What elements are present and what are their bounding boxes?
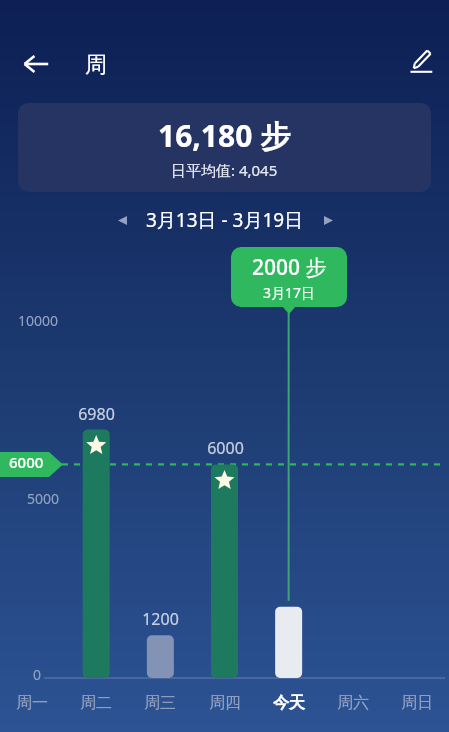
staticText: 16,180 步 [158,115,291,156]
button[interactable]: Back [12,40,60,88]
staticText: 周 [85,51,107,79]
button[interactable]: 周一 [2,689,62,717]
staticText: 6980 [78,403,115,425]
staticText: 6000 [9,452,44,472]
staticText: 10000 [18,311,59,330]
staticText: 周四 [209,693,241,713]
button[interactable]: 周三 [130,689,190,717]
button[interactable]: 周日 [387,689,447,717]
button[interactable]: 周四 [195,689,255,717]
staticText: 周日 [401,693,433,713]
button[interactable]: 周六 [323,689,383,717]
staticText: 3月13日 - 3月19日 [146,207,304,233]
staticText: 5000 [27,489,60,508]
button[interactable]: Edit [400,40,442,82]
staticText: 3月17日 [263,283,316,302]
staticText: 2000 步 [252,253,327,282]
staticText: 周六 [337,693,369,713]
staticText: 周一 [16,693,48,713]
button[interactable]: 今天 [259,689,319,717]
staticText: 日平均值: 4,045 [171,160,278,180]
button[interactable]: 16,180 步 [18,103,431,192]
staticText: 0 [33,665,42,684]
staticText: 6000 [207,437,244,459]
staticText: 今天 [273,693,305,713]
button[interactable]: Previous week [106,204,138,236]
staticText: 1200 [142,608,179,630]
button[interactable]: 周二 [66,689,126,717]
button[interactable]: 6000 [0,452,52,472]
button[interactable]: 2000 步 [231,247,347,307]
staticText: 周二 [80,693,112,713]
staticText: 周三 [144,693,176,713]
button[interactable]: Next week [312,204,344,236]
